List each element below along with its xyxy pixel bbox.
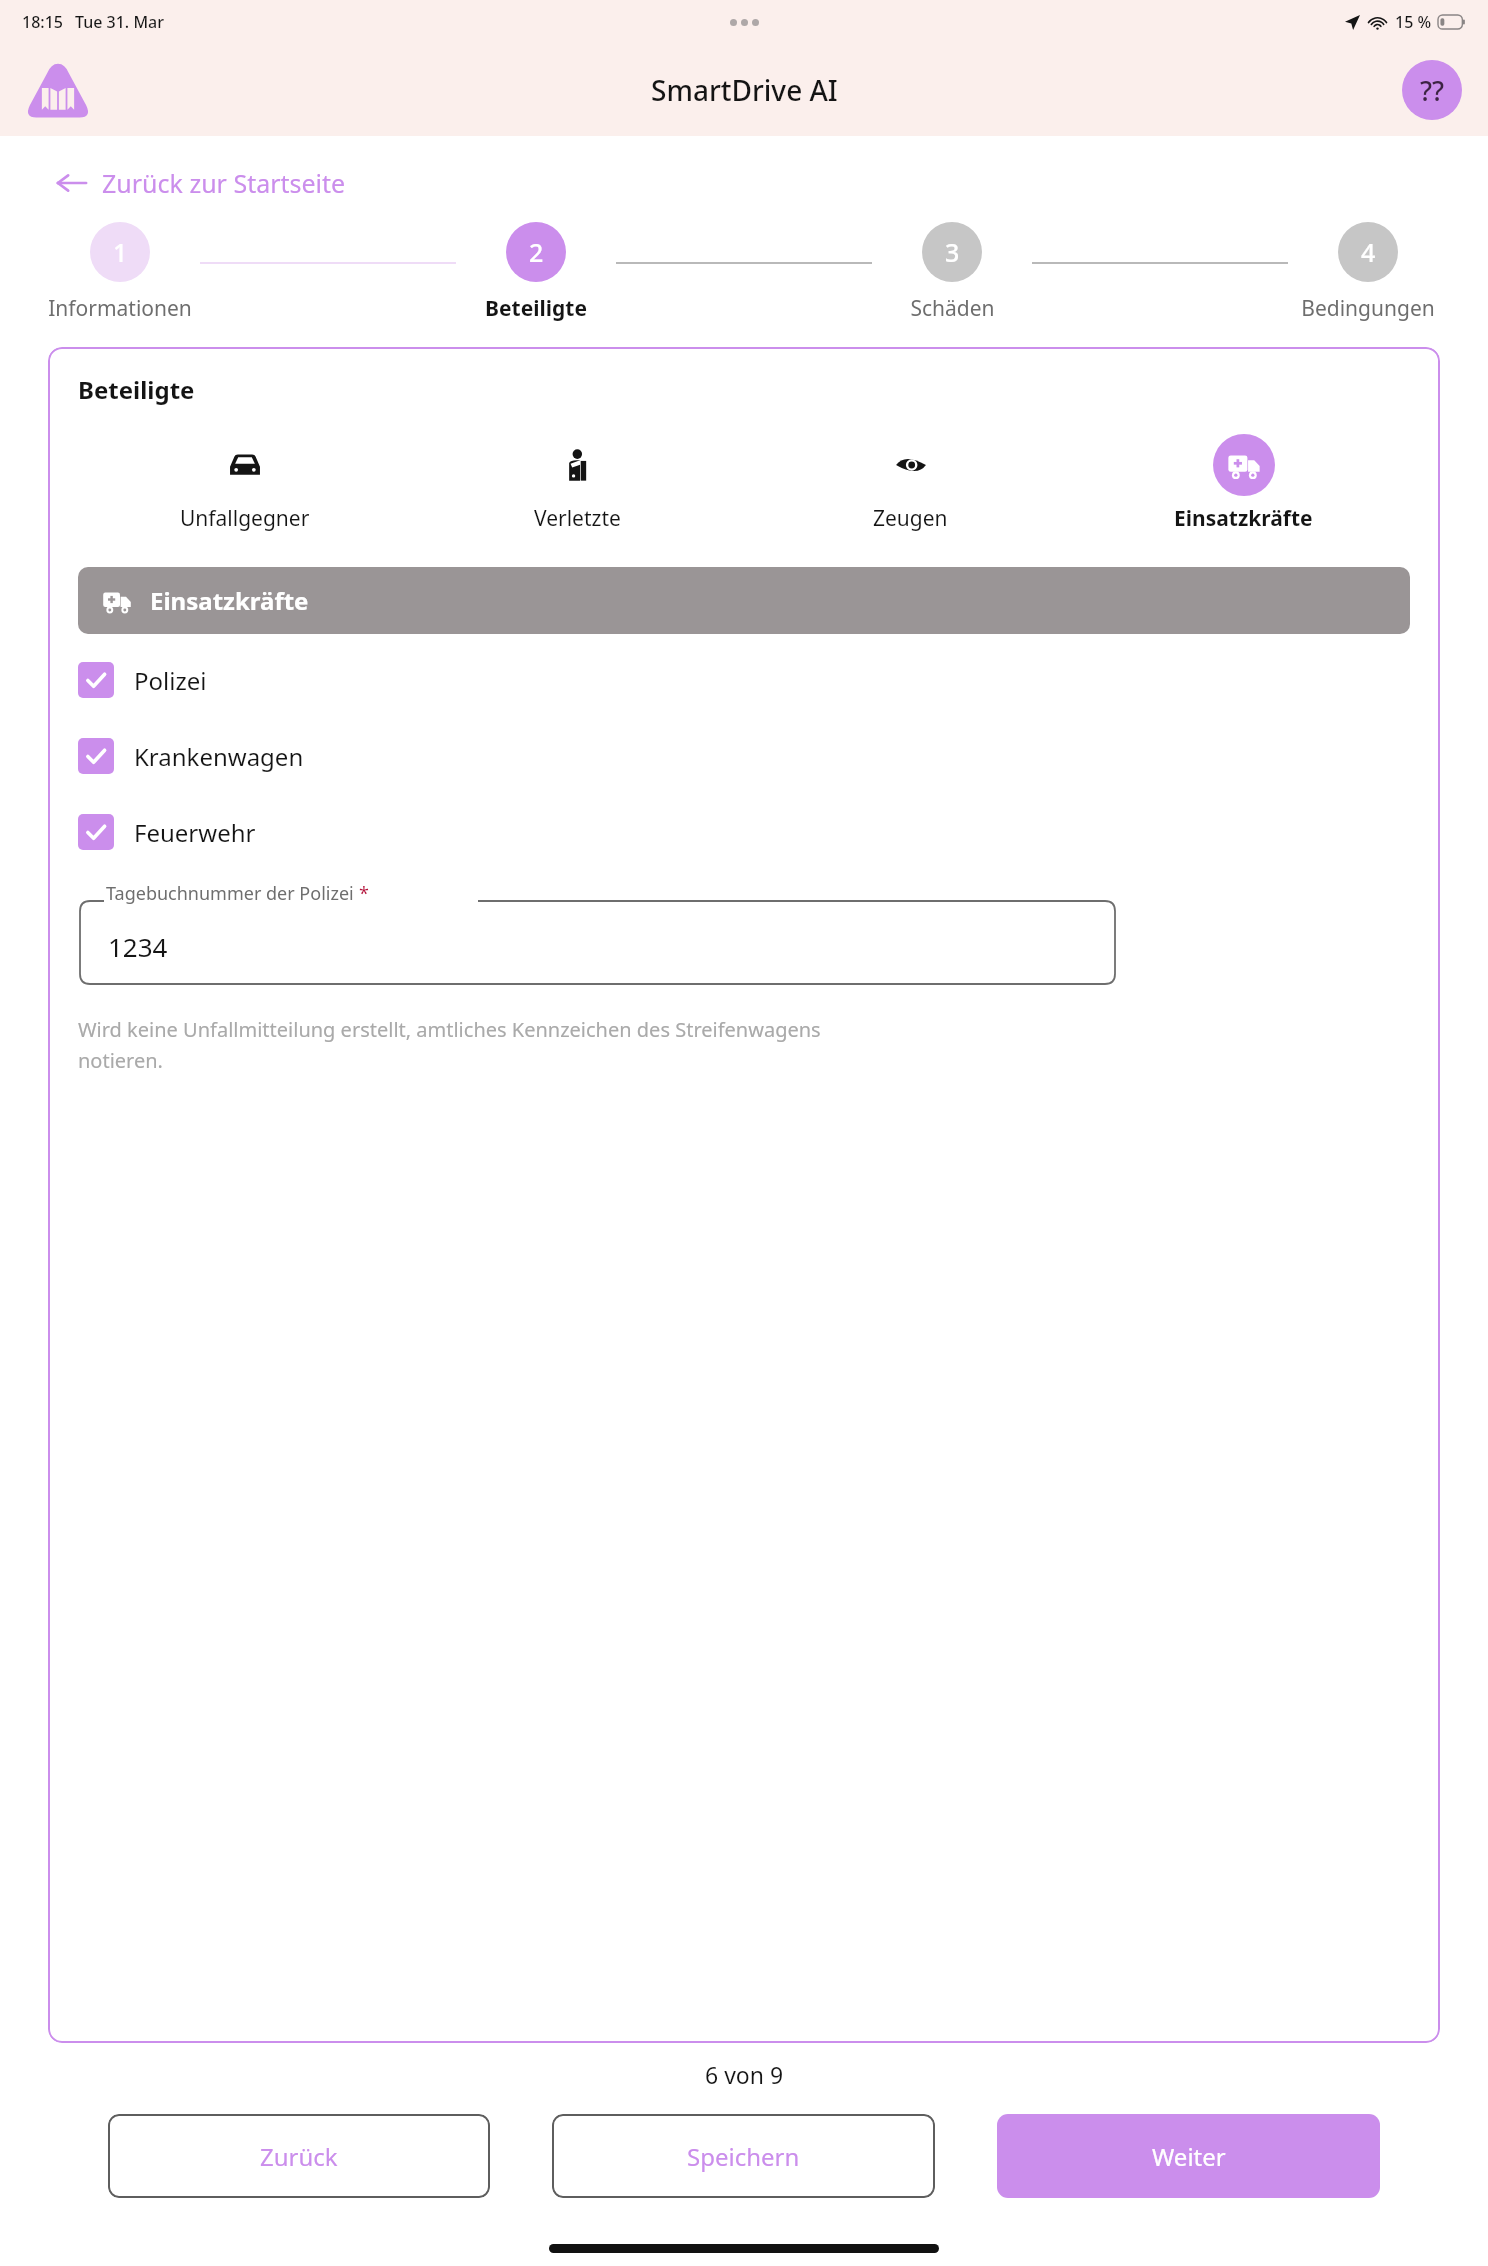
staticText: 18:15: [22, 11, 63, 33]
staticText: Tue 31. Mar: [75, 11, 164, 33]
staticText: 3: [945, 235, 960, 269]
staticText: 1: [113, 235, 128, 269]
staticText: Polizei: [134, 664, 207, 697]
button[interactable]: Polizei: [78, 660, 1410, 700]
button[interactable]: Zurück zur Startseite: [52, 160, 350, 206]
staticText: Krankenwagen: [134, 740, 304, 773]
staticText: Einsatzkräfte: [1174, 504, 1313, 533]
staticText: Zurück: [260, 2140, 338, 2173]
staticText: SmartDrive AI: [651, 71, 838, 109]
staticText: *: [359, 881, 369, 906]
staticText: Verletzte: [534, 504, 621, 533]
staticText: Schäden: [910, 294, 995, 323]
button[interactable]: Weiter: [997, 2114, 1380, 2198]
button[interactable]: Speichern: [552, 2114, 935, 2198]
staticText: Speichern: [687, 2140, 800, 2173]
button[interactable]: Einsatzkräfte: [1077, 430, 1410, 537]
staticText: 15 %: [1395, 11, 1432, 33]
staticText: Zurück zur Startseite: [102, 166, 346, 200]
button[interactable]: 1: [40, 222, 200, 323]
staticText: Einsatzkräfte: [150, 584, 309, 617]
button[interactable]: Feuerwehr: [78, 812, 1410, 852]
button[interactable]: Verletzte: [411, 430, 744, 537]
button[interactable]: Zurück: [108, 2114, 490, 2198]
button[interactable]: Zeugen: [744, 430, 1077, 537]
staticText: 6 von 9: [705, 2059, 784, 2090]
button[interactable]: Hilfe: [1402, 60, 1462, 120]
staticText: Feuerwehr: [134, 816, 256, 849]
staticText: Weiter: [1152, 2140, 1226, 2173]
staticText: Beteiligte: [78, 373, 195, 406]
staticText: Beteiligte: [485, 294, 587, 323]
staticText: Zeugen: [873, 504, 948, 533]
staticText: Wird keine Unfallmitteilung erstellt, am…: [78, 1016, 821, 1073]
staticText: 1234: [108, 929, 168, 964]
button[interactable]: 3: [872, 222, 1032, 323]
staticText: 2: [529, 235, 544, 269]
button[interactable]: 2: [456, 222, 616, 323]
staticText: Bedingungen: [1301, 294, 1435, 323]
staticText: Unfallgegner: [180, 504, 310, 533]
button[interactable]: 4: [1288, 222, 1448, 323]
staticText: 4: [1361, 235, 1376, 269]
staticText: ??: [1420, 72, 1445, 109]
button[interactable]: Tagebuchnummer der Polizei: [78, 890, 1117, 986]
button[interactable]: Unfallgegner: [78, 430, 411, 537]
button[interactable]: SmartDrive logo: [26, 58, 90, 122]
staticText: Informationen: [48, 294, 192, 323]
button[interactable]: Krankenwagen: [78, 736, 1410, 776]
staticText: Tagebuchnummer der Polizei: [106, 881, 359, 906]
button[interactable]: Einsatzkräfte: [78, 567, 1410, 634]
